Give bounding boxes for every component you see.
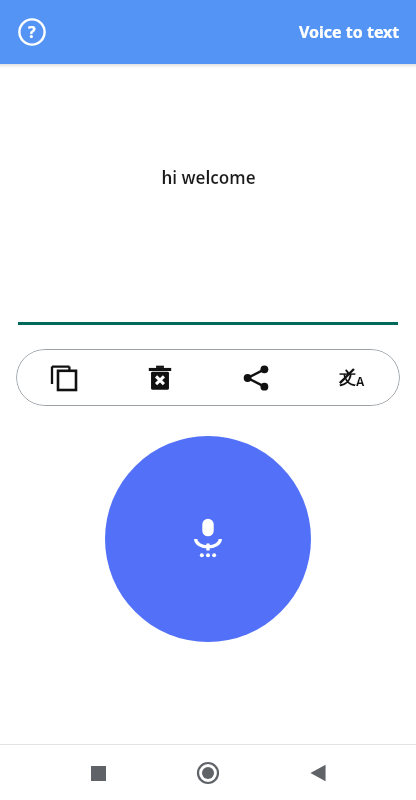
button[interactable]: Translate: [304, 349, 400, 406]
button[interactable]: Home: [184, 749, 232, 797]
button[interactable]: Delete: [112, 349, 208, 406]
button[interactable]: Start voice input: [105, 436, 311, 642]
button[interactable]: Share: [208, 349, 304, 406]
staticText: 文: [339, 368, 356, 389]
staticText: hi welcome: [161, 166, 256, 189]
staticText: Voice to text: [299, 21, 400, 43]
button[interactable]: Help: [10, 10, 54, 54]
staticText: ?: [28, 21, 36, 43]
button[interactable]: Copy: [16, 349, 112, 406]
button[interactable]: Back: [294, 749, 342, 797]
button[interactable]: Recents: [74, 749, 122, 797]
staticText: A: [356, 373, 365, 389]
